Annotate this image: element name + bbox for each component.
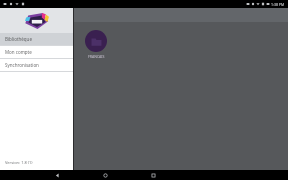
- button[interactable]: Recents: [148, 170, 158, 180]
- staticText: 1:38 PM: [271, 2, 285, 7]
- staticText: Version: 1.8 (1): [5, 160, 33, 165]
- button[interactable]: Synchronisation: [0, 59, 73, 71]
- staticText: FRANCAIS: [88, 54, 105, 59]
- button[interactable]: Back: [52, 170, 62, 180]
- button[interactable]: Home: [100, 170, 110, 180]
- button[interactable]: FRANCAIS: [80, 30, 112, 59]
- staticText: Mon compte: [5, 49, 32, 55]
- staticText: Bibliothèque: [5, 36, 32, 42]
- staticText: Synchronisation: [5, 62, 39, 68]
- button[interactable]: Mon compte: [0, 46, 73, 58]
- button[interactable]: Bibliothèque: [0, 33, 73, 45]
